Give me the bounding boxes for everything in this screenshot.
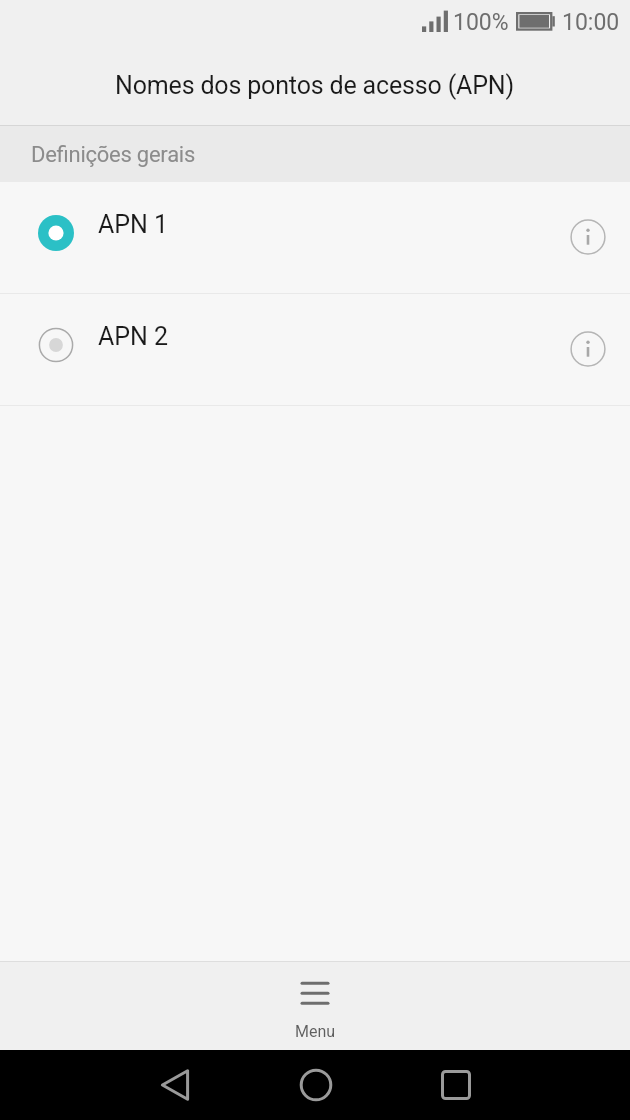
button[interactable]: APN details (553, 202, 623, 272)
button[interactable]: Home (286, 1050, 346, 1120)
staticText: APN 1 (98, 210, 169, 239)
staticText: 100% (453, 9, 509, 36)
button[interactable]: APN 1 (0, 182, 630, 293)
button[interactable]: Menu (0, 962, 630, 1050)
staticText: APN 2 (98, 322, 169, 351)
staticText: Definições gerais (31, 142, 196, 168)
staticText: Menu (295, 1022, 336, 1041)
button[interactable]: APN 2 (0, 294, 630, 405)
staticText: 10:00 (562, 9, 620, 36)
staticText: Nomes dos pontos de acesso (APN) (115, 71, 515, 100)
button[interactable]: Back (145, 1050, 205, 1120)
button[interactable]: APN details (553, 314, 623, 384)
button[interactable]: Recent apps (426, 1050, 486, 1120)
